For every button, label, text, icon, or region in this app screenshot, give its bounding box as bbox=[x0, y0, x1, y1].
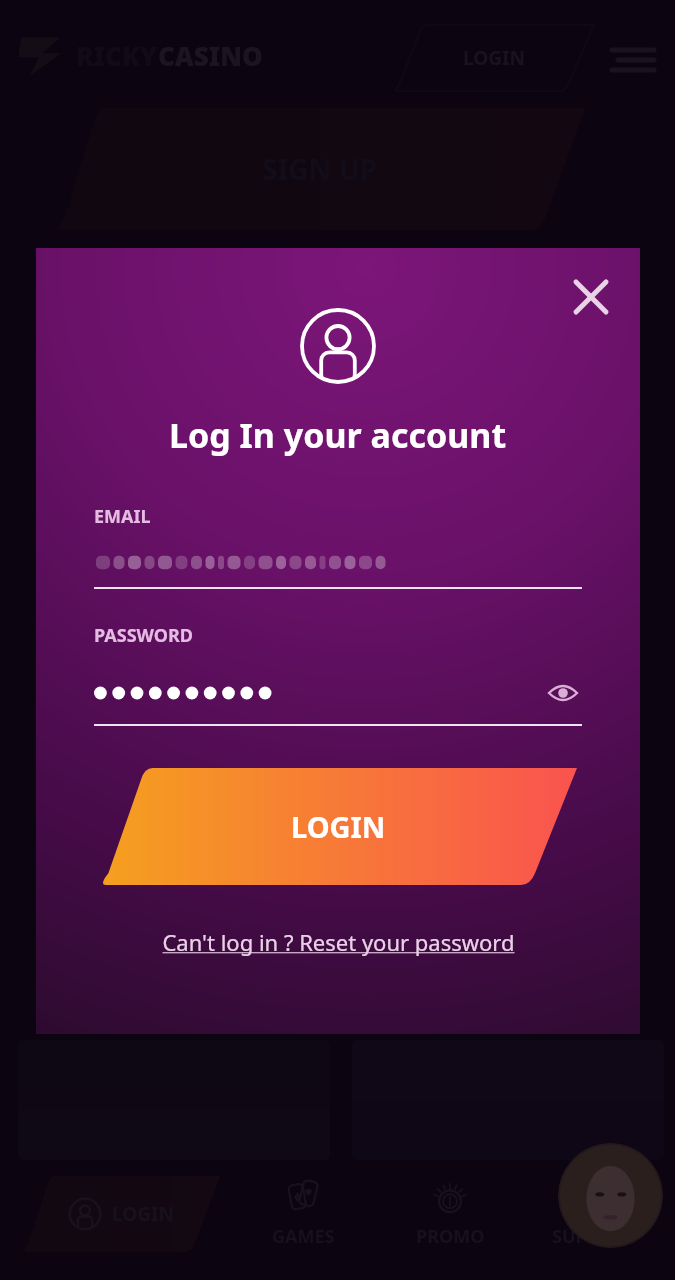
staticText: LOGIN bbox=[112, 1201, 174, 1227]
staticText: Log In your account bbox=[169, 412, 507, 458]
staticText: CASINO bbox=[158, 38, 263, 73]
button[interactable]: PROMO bbox=[395, 1172, 505, 1253]
staticText: SUPPORT bbox=[552, 1224, 635, 1249]
button[interactable]: SUPPORT bbox=[538, 1172, 648, 1253]
staticText: PROMO bbox=[416, 1224, 485, 1249]
button[interactable] bbox=[352, 1040, 664, 1160]
staticText: SIGN UP bbox=[262, 150, 378, 188]
button[interactable]: LOGIN bbox=[99, 768, 577, 885]
button[interactable]: Menu bbox=[610, 38, 656, 84]
button[interactable]: Show password bbox=[544, 674, 582, 712]
staticText: EMAIL bbox=[94, 504, 151, 529]
staticText: PASSWORD bbox=[94, 623, 194, 648]
button[interactable]: Support agent bbox=[558, 1143, 663, 1248]
button[interactable]: Can't log in ? Reset your password bbox=[154, 921, 523, 963]
button[interactable]: Close bbox=[568, 274, 614, 320]
staticText: GAMES bbox=[272, 1224, 335, 1249]
staticText: LOGIN bbox=[463, 45, 525, 71]
staticText: LOGIN bbox=[291, 807, 386, 846]
staticText: Can't log in ? Reset your password bbox=[162, 927, 515, 957]
button[interactable]: GAMES bbox=[248, 1172, 358, 1253]
